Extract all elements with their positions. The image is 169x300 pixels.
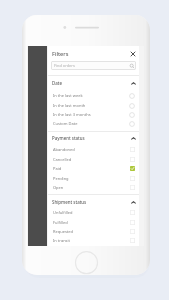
button[interactable]: Fulfilled (48, 218, 139, 227)
button[interactable]: Filters (48, 46, 139, 61)
staticText: In transit (53, 238, 70, 243)
staticText: In the last month (53, 103, 86, 108)
staticText: In the last week (53, 93, 83, 98)
button[interactable]: Unfulfilled (48, 208, 139, 217)
staticText: Open (53, 185, 64, 190)
staticText: Abandoned (53, 147, 75, 152)
button[interactable]: Close filters (127, 48, 138, 59)
staticText: Fulfilled (53, 220, 68, 225)
button[interactable]: Shipment status (48, 197, 139, 207)
button[interactable]: Custom Date (48, 119, 139, 128)
button[interactable]: In the last 3 months (48, 110, 139, 119)
button[interactable]: Requested (48, 227, 139, 236)
button[interactable]: In the last week (48, 91, 139, 100)
button[interactable]: Open (48, 183, 139, 192)
staticText: In the last 3 months (53, 112, 91, 117)
staticText: Payment status (52, 135, 85, 141)
button[interactable]: Find orders (51, 61, 136, 70)
button[interactable]: Date (48, 78, 139, 88)
button[interactable]: In the last month (48, 101, 139, 110)
button[interactable]: Paid (48, 164, 139, 173)
button[interactable]: Cancelled (48, 155, 139, 164)
button[interactable]: Pending (48, 174, 139, 183)
staticText: Requested (53, 229, 74, 234)
staticText: Date (52, 80, 62, 86)
staticText: Filters (52, 50, 69, 58)
staticText: Unfulfilled (53, 210, 73, 215)
staticText: Find orders (54, 63, 75, 68)
staticText: Custom Date (53, 121, 78, 126)
button[interactable]: Abandoned (48, 145, 139, 154)
staticText: Shipment status (52, 199, 87, 205)
staticText: Paid (53, 166, 62, 171)
staticText: Cancelled (53, 157, 72, 162)
button[interactable]: Payment status (48, 133, 139, 143)
staticText: Pending (53, 176, 69, 181)
button[interactable]: In transit (48, 236, 139, 245)
